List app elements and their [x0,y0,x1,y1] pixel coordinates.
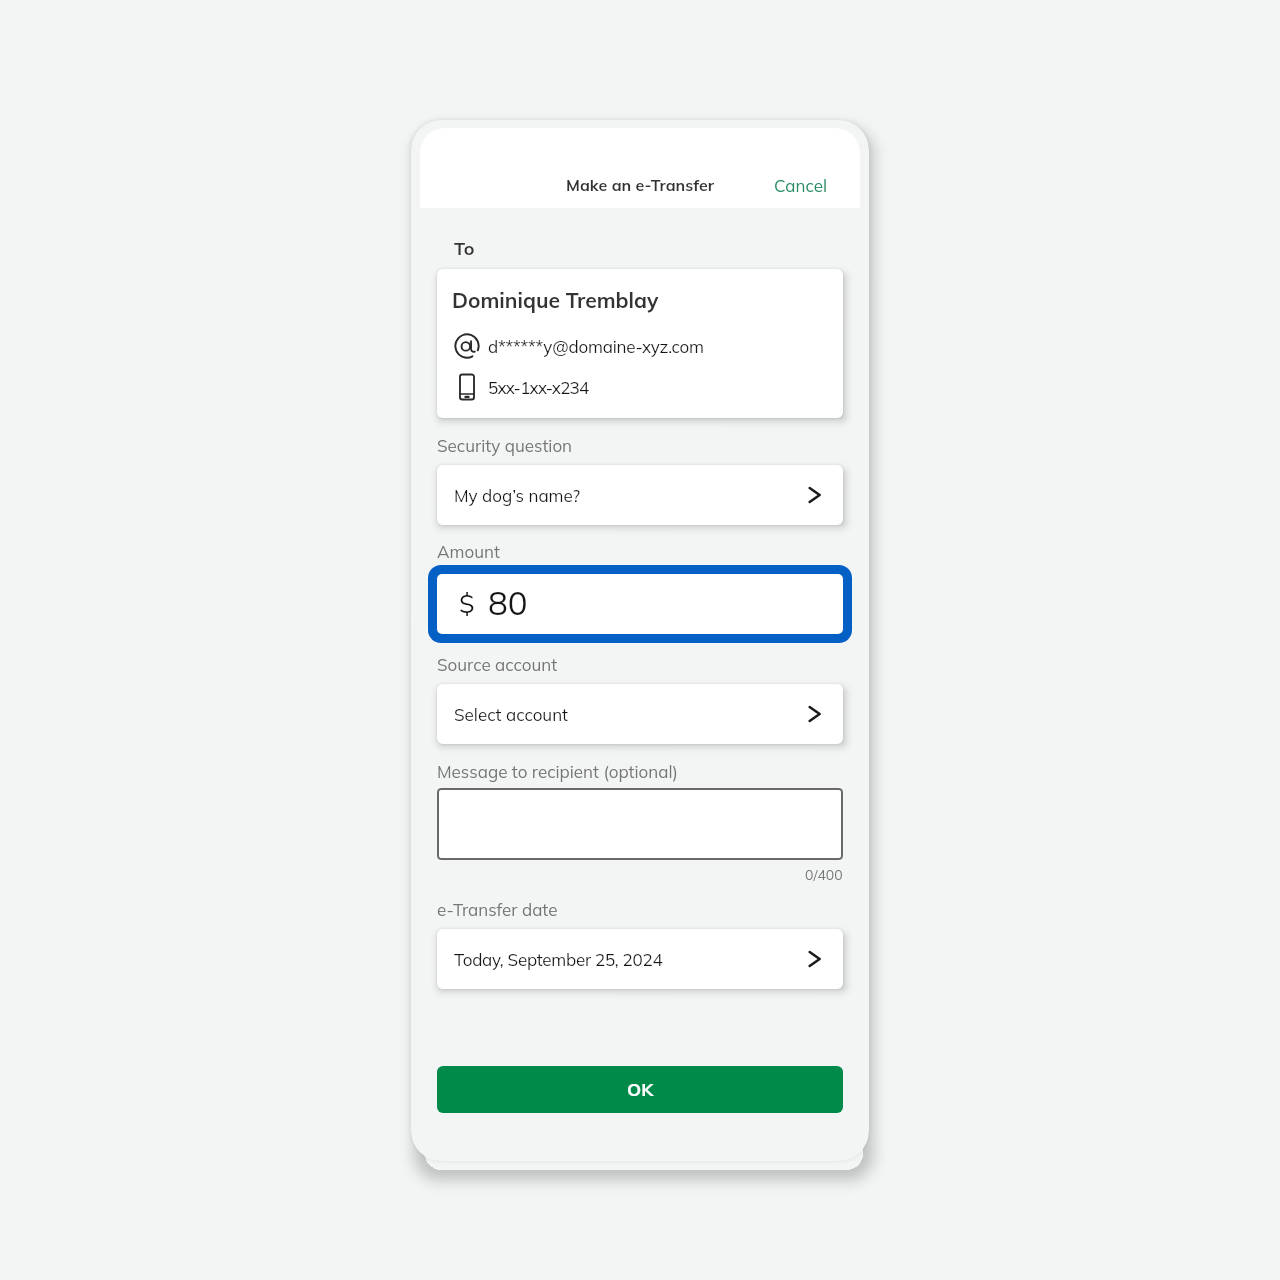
staticText: Make an e-Transfer [566,175,715,195]
staticText: Select account [454,704,569,725]
staticText: To [454,237,475,260]
staticText: Cancel [774,175,828,196]
button[interactable] [437,788,843,860]
button[interactable]: My dog’s name? [437,465,843,525]
button[interactable]: Today, September 25, 2024 [437,929,843,989]
button[interactable]: Select account [437,684,843,744]
other: Open [802,947,826,971]
button[interactable]: OK [437,1066,843,1113]
staticText: 5xx-1xx-x234 [488,377,589,398]
staticText: Message to recipient (optional) [437,761,678,782]
staticText: Today, September 25, 2024 [454,949,663,970]
button[interactable]: $ [437,574,843,634]
staticText: My dog’s name? [454,485,581,506]
staticText: Security question [437,435,573,456]
other: Open [802,483,826,507]
staticText: Dominique Tremblay [452,287,659,313]
staticText: e-Transfer date [437,899,558,920]
button[interactable]: Cancel [752,164,860,207]
staticText: Amount [437,541,500,562]
staticText: 80 [488,582,528,623]
staticText: 0/400 [805,866,843,884]
other: Open [802,702,826,726]
staticText: $ [459,587,475,620]
staticText: OK [627,1078,654,1101]
staticText: Source account [437,654,558,675]
staticText: d******y@domaine-xyz.com [488,336,704,357]
